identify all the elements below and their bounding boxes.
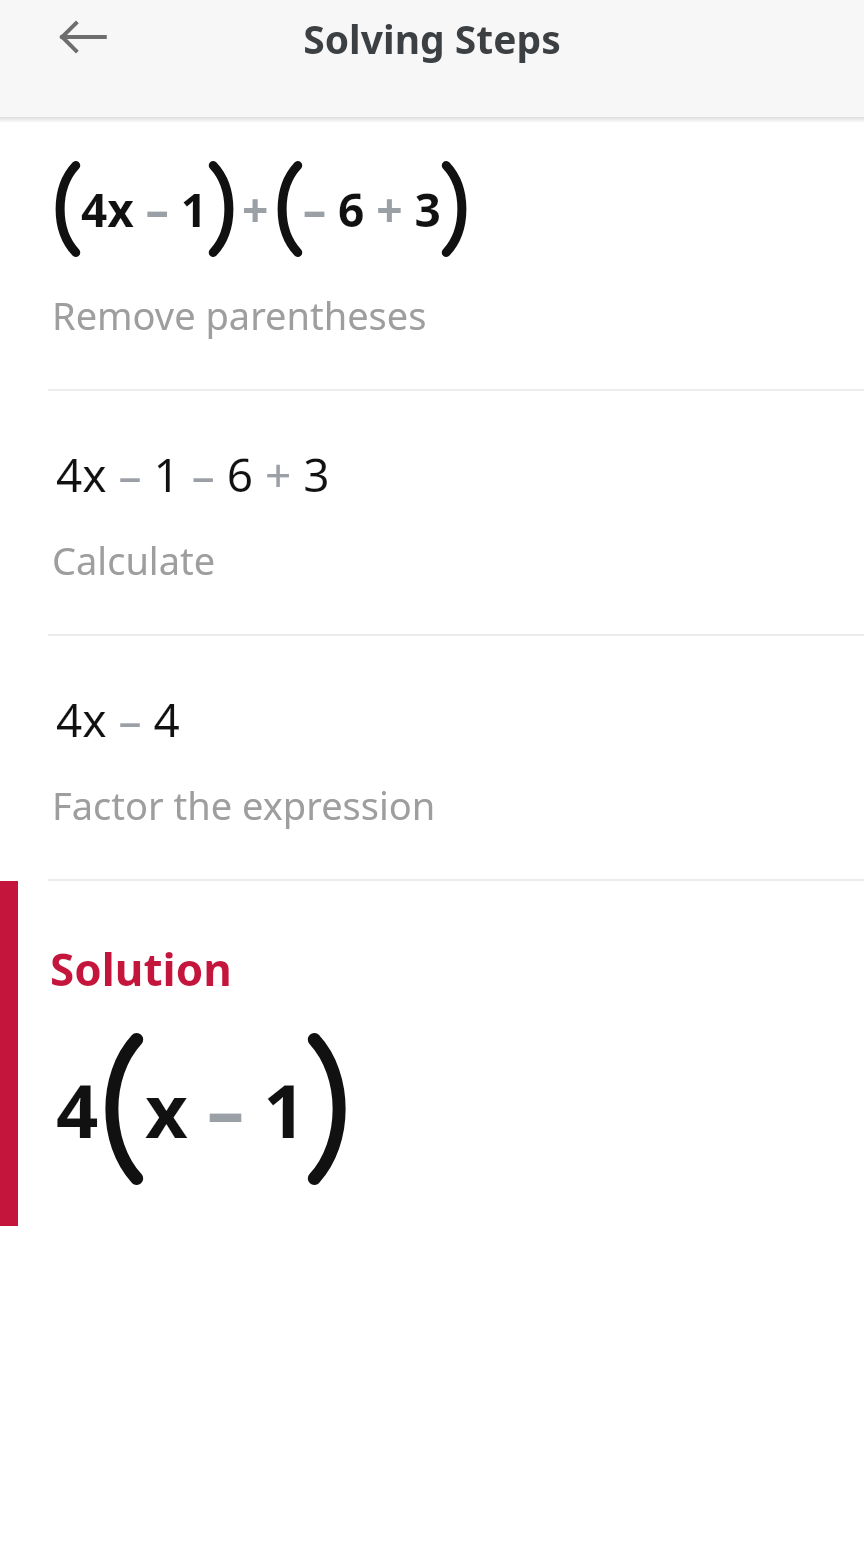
button[interactable]: 4x – 1 – 6 + 3: [56, 443, 864, 506]
staticText: Remove parentheses: [52, 289, 427, 341]
staticText: x – 1: [145, 1059, 306, 1160]
staticText: Factor the expression: [52, 779, 436, 831]
button[interactable]: 4x – 1: [0, 161, 864, 257]
button[interactable]: Back: [46, 0, 120, 74]
staticText: 4: [56, 1059, 99, 1160]
staticText: 4x – 1: [81, 178, 208, 241]
staticText: +: [242, 178, 269, 241]
staticText: Solving Steps: [0, 12, 864, 65]
staticText: Calculate: [52, 534, 216, 586]
button[interactable]: 4x – 4: [56, 688, 864, 751]
staticText: – 6 + 3: [303, 178, 441, 241]
button[interactable]: Solution: [18, 881, 864, 1226]
staticText: Solution: [50, 939, 232, 999]
